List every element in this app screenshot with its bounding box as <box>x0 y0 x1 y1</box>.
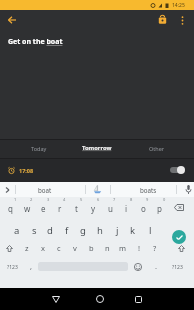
button[interactable]: t <box>68 200 84 216</box>
button[interactable]: h <box>92 222 108 238</box>
button[interactable]: q <box>2 200 18 216</box>
staticText: Other <box>149 145 165 152</box>
staticText: 14:25 <box>172 2 185 9</box>
button[interactable]: c <box>51 240 67 256</box>
staticText: t <box>75 203 78 214</box>
staticText: d <box>47 224 53 237</box>
staticText: e <box>41 203 46 214</box>
staticText: v <box>73 243 77 253</box>
button[interactable]: g <box>75 222 91 238</box>
button[interactable]: x <box>35 240 51 256</box>
staticText: Today <box>31 145 47 152</box>
staticText: j <box>116 224 119 237</box>
staticText: g <box>80 224 86 237</box>
button[interactable]: ? <box>147 240 163 256</box>
button[interactable]: r <box>52 200 68 216</box>
staticText: ! <box>138 243 141 253</box>
staticText: 9 <box>146 197 149 202</box>
staticText: 1 <box>14 197 17 202</box>
staticText: z <box>25 243 29 253</box>
staticText: 2 <box>30 197 33 202</box>
button[interactable]: i <box>118 200 134 216</box>
staticText: ?123 <box>7 264 18 271</box>
button[interactable]: n <box>99 240 115 256</box>
staticText: 3 <box>47 197 50 202</box>
staticText: f <box>65 224 69 237</box>
staticText: h <box>97 224 103 237</box>
button[interactable] <box>182 183 194 196</box>
staticText: 5 <box>80 197 83 202</box>
staticText: ?123 <box>172 264 183 271</box>
staticText: u <box>108 203 113 214</box>
button[interactable]: d <box>42 222 58 238</box>
button[interactable] <box>46 291 66 307</box>
button[interactable]: p <box>151 200 167 216</box>
button[interactable] <box>131 260 145 274</box>
button[interactable] <box>4 12 20 28</box>
staticText: m <box>119 243 127 253</box>
button[interactable]: s <box>26 222 42 238</box>
staticText: 17:08 <box>19 167 34 174</box>
staticText: o <box>141 203 146 214</box>
button[interactable] <box>90 291 110 307</box>
staticText: Get on the boat <box>8 37 63 47</box>
button[interactable]: m <box>115 240 131 256</box>
button[interactable]: e <box>35 200 51 216</box>
staticText: k <box>130 224 136 237</box>
staticText: 0 <box>163 197 166 202</box>
button[interactable]: y <box>85 200 101 216</box>
button[interactable]: Other <box>132 139 182 157</box>
button[interactable]: ! <box>131 240 147 256</box>
button[interactable] <box>128 291 148 307</box>
button[interactable] <box>173 241 189 255</box>
button[interactable]: v <box>67 240 83 256</box>
staticText: q <box>8 203 13 214</box>
staticText: boat <box>38 186 52 194</box>
button[interactable]: . <box>148 258 164 274</box>
button[interactable] <box>174 12 190 28</box>
staticText: r <box>58 203 62 214</box>
button[interactable]: j <box>109 222 125 238</box>
button[interactable]: k <box>125 222 141 238</box>
button[interactable]: ?123 <box>2 259 22 275</box>
staticText: Tomorrow <box>82 144 112 152</box>
staticText: . <box>155 261 158 271</box>
button[interactable] <box>0 159 150 182</box>
staticText: a <box>14 224 20 237</box>
staticText: boats <box>140 186 157 194</box>
button[interactable]: a <box>9 222 25 238</box>
button[interactable]: boat <box>18 182 72 197</box>
button[interactable]: l <box>142 222 158 238</box>
staticText: , <box>30 261 33 271</box>
button[interactable]: u <box>102 200 118 216</box>
staticText: l <box>149 224 152 237</box>
button[interactable] <box>154 11 170 27</box>
button[interactable] <box>1 241 17 255</box>
button[interactable]: w <box>19 200 35 216</box>
staticText: 7 <box>113 197 116 202</box>
button[interactable]: f <box>59 222 75 238</box>
button[interactable]: z <box>19 240 35 256</box>
button[interactable] <box>167 164 185 176</box>
staticText: s <box>32 224 37 237</box>
staticText: 6 <box>97 197 100 202</box>
staticText: ? <box>153 243 157 253</box>
staticText: w <box>24 203 31 214</box>
button[interactable]: Tomorrow <box>67 139 127 157</box>
staticText: y <box>91 203 96 214</box>
button[interactable]: boats <box>120 182 176 197</box>
button[interactable] <box>171 200 187 214</box>
button[interactable]: ?123 <box>167 259 187 275</box>
staticText: p <box>157 203 162 214</box>
button[interactable]: Today <box>14 139 64 157</box>
button[interactable] <box>172 230 186 244</box>
staticText: c <box>57 243 61 253</box>
button[interactable]: , <box>23 258 39 274</box>
button[interactable]: b <box>83 240 99 256</box>
staticText: b <box>89 243 94 253</box>
button[interactable]: o <box>135 200 151 216</box>
staticText: 4 <box>63 197 66 202</box>
staticText: i <box>125 203 128 214</box>
button[interactable] <box>93 185 102 194</box>
